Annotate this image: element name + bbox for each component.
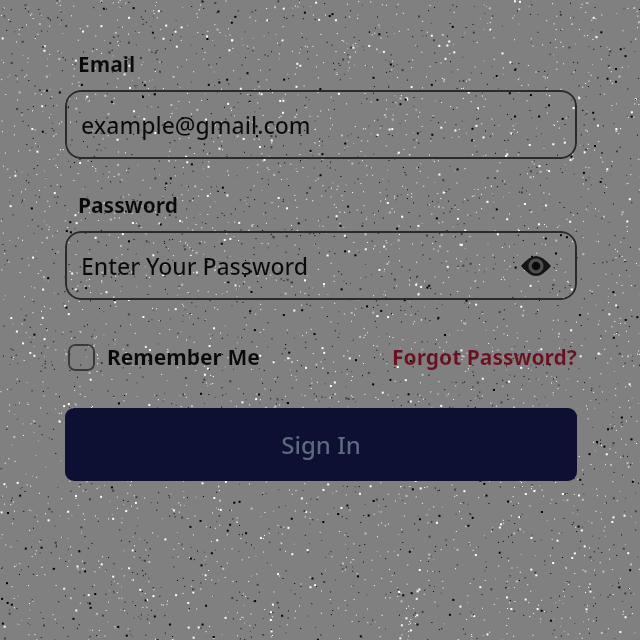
- staticText: Sign In: [281, 428, 361, 461]
- button[interactable]: Remember Me: [65, 343, 260, 372]
- staticText: Email: [78, 50, 136, 79]
- staticText: Password: [78, 191, 179, 220]
- button[interactable]: Forgot Password?: [392, 343, 577, 372]
- staticText: Remember Me: [107, 343, 260, 372]
- button[interactable]: Sign In: [65, 408, 577, 481]
- staticText: example@gmail.com: [81, 109, 311, 140]
- button[interactable]: Show password: [519, 249, 553, 283]
- staticText: Enter Your Password: [81, 250, 309, 281]
- button[interactable]: Enter Your Password: [65, 231, 577, 300]
- button[interactable]: example@gmail.com: [65, 90, 577, 159]
